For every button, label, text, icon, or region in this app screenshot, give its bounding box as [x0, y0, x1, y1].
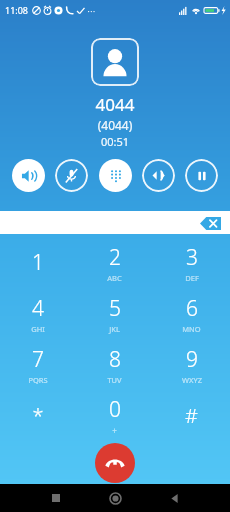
- staticText: #: [185, 402, 198, 429]
- staticText: ABC: [107, 273, 122, 283]
- staticText: 00:51: [0, 134, 230, 149]
- button[interactable]: *: [0, 390, 76, 441]
- button[interactable]: 2: [76, 237, 153, 288]
- staticText: 4044: [0, 93, 230, 116]
- staticText: 5: [109, 294, 121, 323]
- staticText: JKL: [109, 324, 120, 334]
- button[interactable]: Mute: [55, 159, 88, 192]
- staticText: 6: [186, 294, 198, 323]
- button[interactable]: 5: [76, 288, 153, 339]
- staticText: WXYZ: [182, 375, 202, 385]
- button[interactable]: 8: [76, 339, 153, 390]
- button[interactable]: End call: [95, 443, 135, 483]
- button[interactable]: 3: [153, 237, 230, 288]
- staticText: 8: [109, 345, 121, 374]
- staticText: PQRS: [28, 375, 48, 385]
- staticText: *: [32, 402, 44, 429]
- staticText: 0: [109, 395, 121, 424]
- button[interactable]: 9: [153, 339, 230, 390]
- staticText: 7: [32, 345, 44, 374]
- staticText: 2: [109, 243, 121, 272]
- button[interactable]: Backspace: [198, 213, 222, 233]
- staticText: (4044): [0, 117, 230, 133]
- staticText: 3: [186, 243, 198, 272]
- button[interactable]: Recent apps: [44, 486, 68, 510]
- staticText: DEF: [185, 273, 199, 283]
- button[interactable]: 6: [153, 288, 230, 339]
- staticText: 9: [186, 345, 198, 374]
- button[interactable]: 4: [0, 288, 76, 339]
- button[interactable]: Contact photo: [91, 38, 139, 86]
- button[interactable]: Home: [103, 486, 127, 510]
- button[interactable]: 1: [0, 237, 76, 288]
- button[interactable]: Hold: [185, 159, 218, 192]
- button[interactable]: Transfer call: [142, 159, 175, 192]
- staticText: 1: [32, 248, 44, 277]
- button[interactable]: Back: [162, 486, 186, 510]
- button[interactable]: 0: [76, 390, 153, 441]
- staticText: 4: [32, 294, 44, 323]
- staticText: GHI: [31, 324, 45, 334]
- button[interactable]: #: [153, 390, 230, 441]
- staticText: +: [112, 425, 117, 436]
- button[interactable]: Speaker: [12, 159, 45, 192]
- staticText: TUV: [107, 375, 122, 385]
- staticText: 11:08: [5, 4, 29, 16]
- staticText: MNO: [182, 324, 201, 334]
- button[interactable]: 7: [0, 339, 76, 390]
- button[interactable]: Dialpad: [99, 159, 132, 192]
